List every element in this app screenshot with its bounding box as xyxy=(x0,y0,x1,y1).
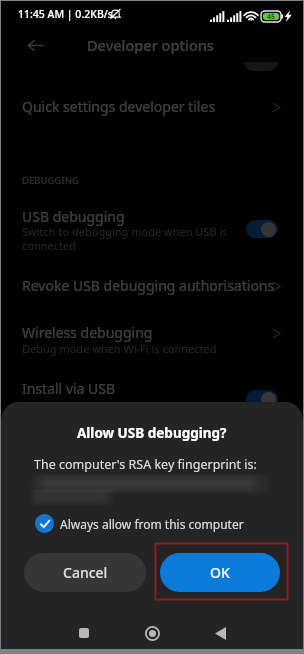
button[interactable]: OK xyxy=(160,553,280,592)
staticText: 11:45 AM | 0.2KB/s xyxy=(18,7,113,21)
button[interactable]: Recent apps xyxy=(62,611,106,654)
staticText: Developer options xyxy=(87,35,214,55)
staticText: Always allow from this computer xyxy=(60,516,244,532)
button[interactable]: Cancel xyxy=(24,553,146,592)
staticText: Switch to debugging mode when USB is con… xyxy=(22,224,228,253)
staticText: The computer's RSA key fingerprint is: xyxy=(34,456,257,473)
button[interactable]: Back xyxy=(198,611,242,654)
button[interactable]: Revoke USB debugging authorisations xyxy=(0,262,304,306)
button[interactable]: Back xyxy=(16,26,54,64)
staticText: Cancel xyxy=(63,563,108,582)
staticText: USB debugging xyxy=(22,207,125,226)
staticText: Revoke USB debugging authorisations xyxy=(22,276,275,295)
staticText: Debug mode when Wi-Fi is connected xyxy=(22,341,217,356)
staticText: Allow USB debugging? xyxy=(77,424,227,442)
button[interactable]: Always allow from this computer xyxy=(35,514,244,533)
staticText: DEBUGGING xyxy=(22,174,79,187)
button[interactable]: Toggle xyxy=(246,220,278,238)
button[interactable]: Wireless debugging xyxy=(0,309,304,353)
staticText: Wireless debugging xyxy=(22,323,153,342)
button[interactable]: USB debugging xyxy=(0,193,304,237)
button[interactable]: Toggle xyxy=(246,390,278,408)
button[interactable]: Install via USB xyxy=(0,365,304,409)
staticText: Install via USB xyxy=(22,379,116,398)
staticText: OK xyxy=(210,563,230,582)
staticText: 45 xyxy=(267,12,276,22)
button[interactable]: Home xyxy=(130,611,174,654)
staticText: Quick settings developer tiles xyxy=(22,97,216,116)
button[interactable]: Quick settings developer tiles xyxy=(0,83,304,127)
